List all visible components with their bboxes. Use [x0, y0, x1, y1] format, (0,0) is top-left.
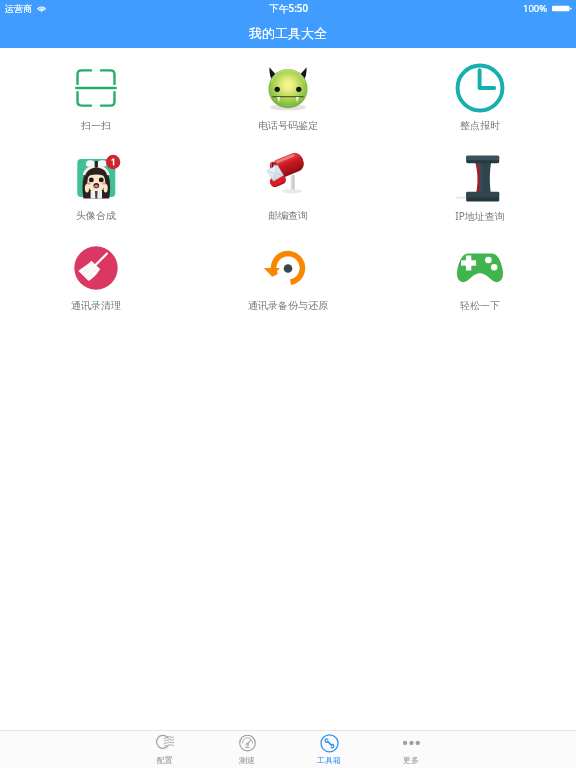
button[interactable]: 配置 — [124, 730, 206, 768]
other: Battery full — [552, 4, 572, 13]
button[interactable]: 轻松一下 — [384, 228, 576, 318]
button[interactable]: 电话号码鉴定 — [192, 48, 384, 138]
staticText: 电话号码鉴定 — [258, 119, 318, 132]
button[interactable]: 整点报时 — [384, 48, 576, 138]
staticText: 测速 — [239, 755, 255, 765]
staticText: 配置 — [157, 755, 173, 765]
staticText: 扫一扫 — [81, 119, 111, 132]
staticText: IP地址查询 — [455, 209, 505, 223]
button[interactable]: 工具箱 — [288, 730, 370, 768]
staticText: 通讯录备份与还原 — [248, 299, 328, 312]
staticText: 头像合成 — [76, 209, 116, 222]
button[interactable]: IP地址查询 — [384, 138, 576, 228]
staticText: 更多 — [403, 755, 419, 765]
staticText: 我的工具大全 — [249, 25, 327, 41]
button[interactable]: 通讯录备份与还原 — [192, 228, 384, 318]
other: Wi-Fi signal — [37, 5, 46, 12]
staticText: 通讯录清理 — [71, 299, 121, 312]
button[interactable]: 通讯录清理 — [0, 228, 192, 318]
staticText: 整点报时 — [460, 119, 500, 132]
staticText: 邮编查询 — [268, 209, 308, 222]
staticText: 100% — [523, 2, 548, 15]
staticText: 运营商 — [5, 3, 32, 14]
button[interactable]: 更多 — [370, 730, 452, 768]
staticText: 轻松一下 — [460, 299, 500, 312]
button[interactable]: 头像合成 — [0, 138, 192, 228]
button[interactable]: 邮编查询 — [192, 138, 384, 228]
staticText: 工具箱 — [317, 755, 341, 765]
button[interactable]: 测速 — [206, 730, 288, 768]
staticText: 下午5:50 — [269, 2, 309, 15]
button[interactable]: 扫一扫 — [0, 48, 192, 138]
